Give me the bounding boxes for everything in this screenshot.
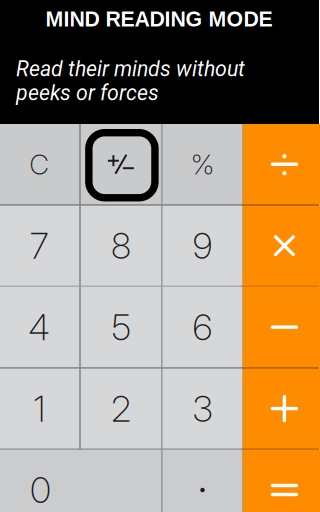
button[interactable]: Multiply (243, 205, 320, 286)
staticText: 8 (111, 224, 131, 267)
button[interactable] (81, 124, 161, 204)
button[interactable]: 5 (81, 287, 161, 367)
staticText: C (29, 147, 49, 181)
button[interactable]: C (0, 124, 80, 204)
staticText: 7 (30, 224, 49, 267)
staticText: 6 (192, 305, 212, 349)
button[interactable]: 8 (81, 205, 161, 286)
staticText: 3 (192, 387, 212, 430)
button[interactable]: 0 (0, 450, 161, 512)
button[interactable]: 9 (162, 205, 243, 286)
staticText: Read their minds without (16, 56, 245, 81)
button[interactable]: Equals (243, 450, 320, 512)
staticText: 9 (192, 224, 212, 267)
staticText: 1 (33, 387, 45, 430)
button[interactable] (162, 450, 243, 512)
button[interactable]: Divide (243, 124, 320, 204)
staticText: MIND READING MODE (45, 7, 272, 31)
button[interactable]: 3 (162, 368, 243, 449)
staticText: % (190, 147, 214, 181)
staticText: 2 (111, 387, 131, 430)
staticText: 4 (28, 305, 50, 349)
button[interactable]: 6 (162, 287, 243, 367)
button[interactable]: % (162, 124, 243, 204)
button[interactable]: Subtract (243, 287, 320, 367)
button[interactable]: 1 (0, 368, 80, 449)
staticText: 5 (111, 305, 130, 349)
button[interactable]: 2 (81, 368, 161, 449)
button[interactable]: Add (243, 368, 320, 449)
staticText: 0 (30, 468, 51, 512)
staticText: peeks or forces (16, 80, 159, 105)
button[interactable]: 7 (0, 205, 80, 286)
button[interactable]: 4 (0, 287, 80, 367)
